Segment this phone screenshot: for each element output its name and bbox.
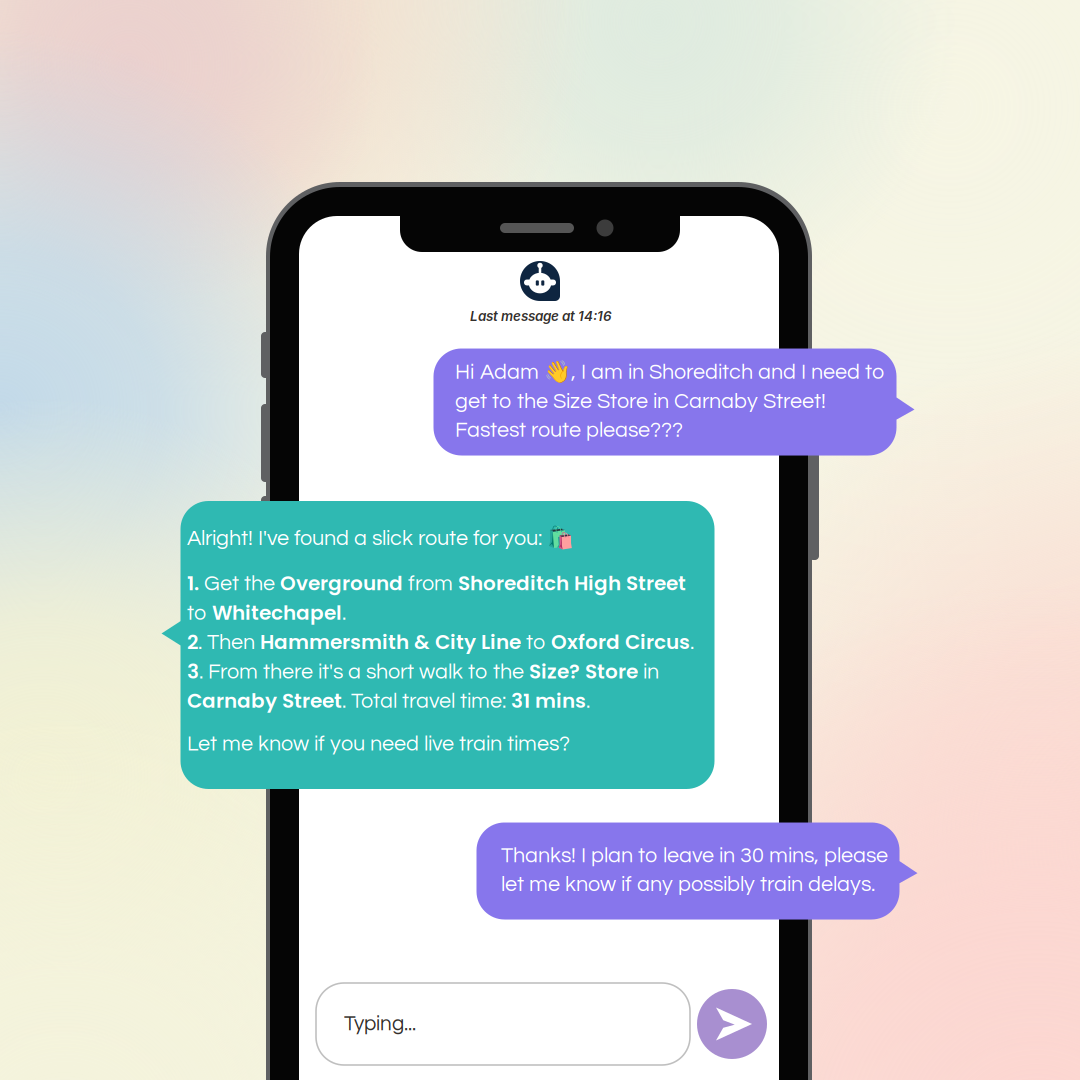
button[interactable]: Alright! I've found a slick route for yo… (161, 501, 714, 789)
staticText: let me know if any possibly train delays… (501, 873, 875, 895)
staticText: 1. Get the Overground from Shoreditch Hi… (187, 570, 686, 597)
button[interactable]: Hi Adam 👋, I am in Shoreditch and I need… (433, 348, 914, 455)
staticText: Let me know if you need live train times… (187, 733, 570, 755)
staticText: get to the Size Store in Carnaby Street! (455, 390, 826, 413)
button[interactable]: Send (697, 989, 767, 1059)
staticText: 3. From there it's a short walk to the S… (187, 658, 659, 685)
button[interactable]: Thanks! I plan to leave in 30 mins, plea… (476, 822, 917, 919)
staticText: Typing... (344, 1013, 416, 1035)
staticText: Hi Adam 👋, I am in Shoreditch and I need… (455, 359, 884, 384)
staticText: Fastest route please??? (455, 419, 683, 441)
button[interactable]: Typing... (316, 983, 690, 1065)
staticText: Last message at 14:16 (470, 308, 612, 324)
staticText: to Whitechapel. (187, 599, 346, 626)
staticText: Thanks! I plan to leave in 30 mins, plea… (501, 845, 888, 867)
staticText: Alright! I've found a slick route for yo… (187, 525, 574, 550)
staticText: 2. Then Hammersmith & City Line to Oxfor… (187, 628, 694, 656)
staticText: Carnaby Street. Total travel time: 31 mi… (187, 687, 590, 714)
